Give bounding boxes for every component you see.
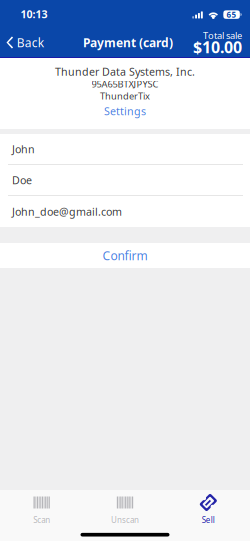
- button[interactable]: Doe: [0, 165, 250, 196]
- staticText: Payment (card): [83, 34, 173, 50]
- button[interactable]: Back: [0, 29, 50, 55]
- staticText: John: [12, 142, 35, 156]
- button[interactable]: Sell: [167, 494, 250, 526]
- button[interactable]: Settings: [0, 102, 250, 120]
- staticText: Sell: [202, 515, 215, 525]
- button[interactable]: Total sale: [193, 31, 250, 54]
- staticText: Unscan: [111, 515, 139, 525]
- staticText: Back: [17, 34, 44, 50]
- staticText: Scan: [33, 515, 50, 525]
- staticText: 10:13: [20, 7, 47, 21]
- button[interactable]: Scan: [0, 494, 83, 526]
- button[interactable]: John: [0, 134, 250, 165]
- staticText: 95A65BTXJPYSC: [91, 78, 158, 90]
- staticText: Doe: [12, 173, 32, 187]
- button[interactable]: Unscan: [83, 494, 167, 526]
- staticText: Thunder Data Systems, Inc.: [55, 64, 195, 79]
- staticText: Confirm: [102, 247, 147, 263]
- button[interactable]: Confirm: [0, 243, 250, 268]
- staticText: 65: [227, 9, 237, 20]
- staticText: Total sale: [203, 29, 242, 42]
- staticText: Settings: [104, 104, 146, 118]
- staticText: $10.00: [193, 36, 242, 58]
- staticText: ThunderTix: [100, 90, 150, 102]
- button[interactable]: John_doe@gmail.com: [0, 196, 250, 227]
- staticText: John_doe@gmail.com: [12, 204, 122, 219]
